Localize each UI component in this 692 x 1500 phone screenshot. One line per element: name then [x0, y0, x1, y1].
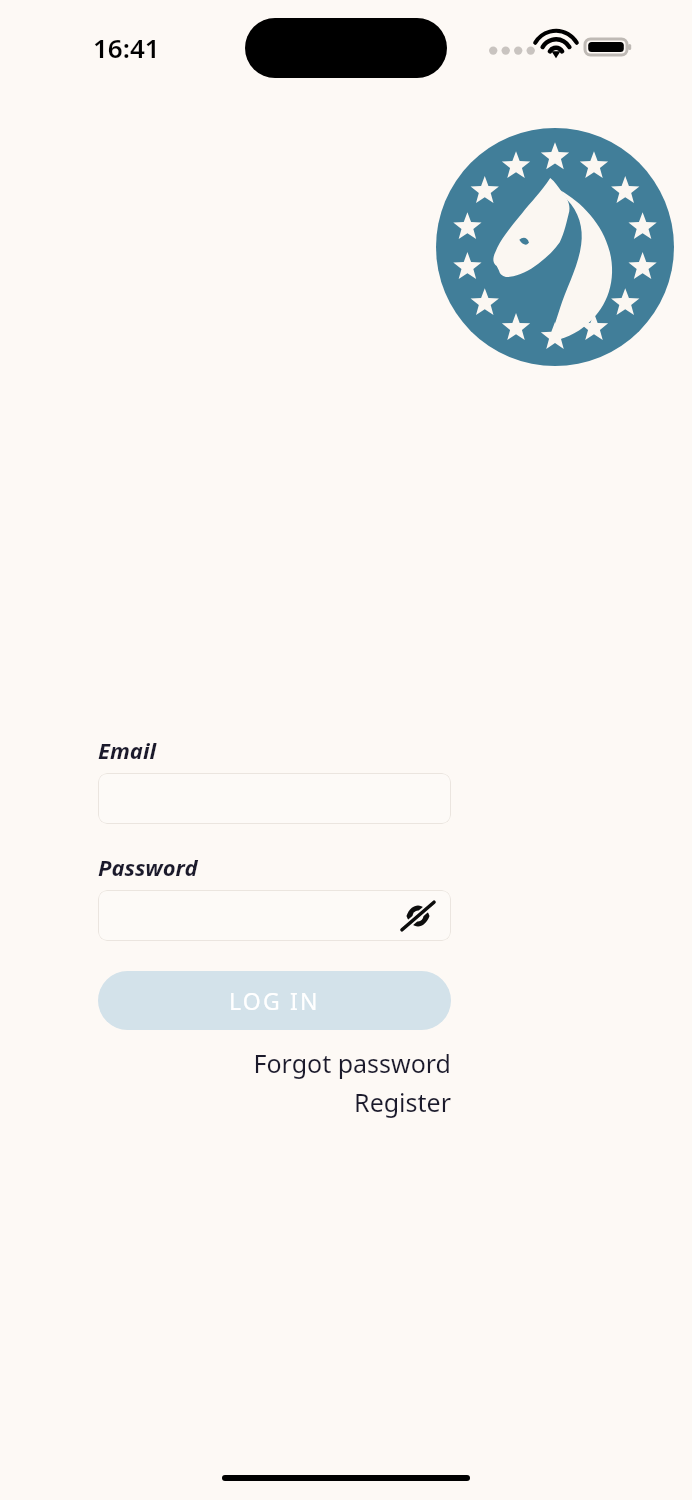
staticText: LOG IN [229, 985, 320, 1016]
button[interactable]: Forgot password [98, 1046, 451, 1080]
button[interactable] [98, 773, 451, 824]
staticText: Email [98, 735, 157, 765]
staticText: Register [354, 1085, 451, 1119]
staticText: Password [98, 852, 198, 882]
button[interactable]: Register [98, 1085, 451, 1119]
staticText: 16:41 [93, 30, 160, 65]
other: App logo [436, 128, 674, 366]
button[interactable]: Show password [397, 895, 439, 937]
button[interactable]: Show password [98, 890, 451, 941]
button[interactable]: LOG IN [98, 971, 451, 1030]
staticText: Forgot password [253, 1046, 451, 1080]
